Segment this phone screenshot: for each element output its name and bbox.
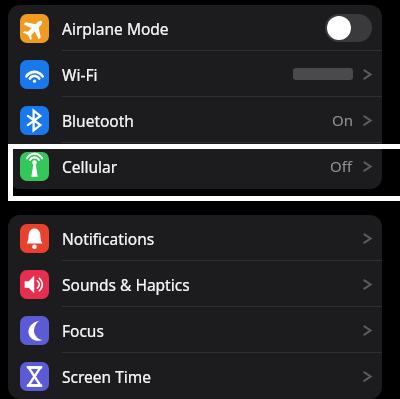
staticText: Airplane Mode [62, 18, 169, 39]
staticText: Sounds & Haptics [62, 274, 190, 295]
staticText: Wi-Fi [62, 64, 98, 85]
staticText: Off [330, 156, 353, 176]
button[interactable]: Cellular [8, 143, 382, 189]
staticText: On [332, 110, 353, 130]
button[interactable]: Airplane Mode [8, 5, 382, 51]
staticText: Focus [62, 320, 104, 341]
button[interactable]: Focus [8, 307, 382, 353]
staticText: Bluetooth [62, 110, 134, 131]
button[interactable]: Screen Time [8, 353, 382, 399]
button[interactable]: Sounds & Haptics [8, 261, 382, 307]
button[interactable]: Notifications [8, 215, 382, 261]
staticText: Cellular [62, 156, 118, 177]
staticText: Notifications [62, 228, 155, 249]
button[interactable]: Bluetooth [8, 97, 382, 143]
button[interactable]: Wi-Fi [8, 51, 382, 97]
staticText: Screen Time [62, 366, 151, 387]
button[interactable]: Airplane Mode toggle, off [325, 14, 372, 42]
